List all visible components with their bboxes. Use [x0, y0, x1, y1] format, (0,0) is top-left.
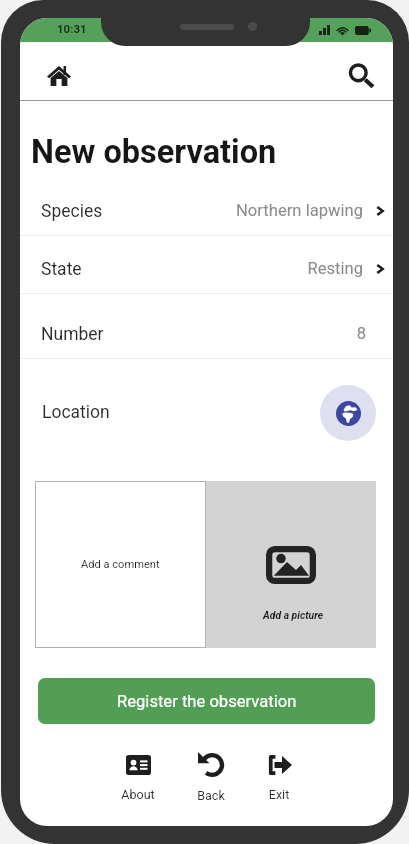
- button[interactable]: Home: [37, 54, 81, 98]
- button[interactable]: Exit: [248, 747, 310, 812]
- staticText: State: [41, 259, 82, 280]
- staticText: Number: [41, 324, 104, 345]
- button[interactable]: Search: [339, 53, 383, 97]
- staticText: Location: [42, 402, 110, 423]
- staticText: Northern lapwing: [20, 201, 363, 220]
- button[interactable]: Back: [180, 744, 242, 812]
- staticText: Add a picture: [263, 609, 324, 621]
- button[interactable]: About: [107, 747, 169, 812]
- button[interactable]: Location: [20, 358, 393, 440]
- staticText: About: [107, 787, 169, 802]
- button[interactable]: State: [20, 235, 393, 293]
- staticText: Species: [41, 201, 103, 222]
- staticText: Register the observation: [117, 692, 297, 711]
- button[interactable]: Species: [20, 177, 393, 235]
- button[interactable]: Number: [20, 293, 393, 358]
- staticText: Back: [180, 788, 242, 803]
- staticText: 8: [20, 324, 366, 343]
- button[interactable]: Register the observation: [38, 678, 375, 724]
- button[interactable]: Add a comment: [35, 481, 206, 648]
- button[interactable]: Add a picture: [206, 481, 376, 648]
- staticText: 10:31: [57, 22, 87, 35]
- staticText: Exit: [248, 787, 310, 802]
- staticText: Add a comment: [81, 558, 160, 571]
- staticText: Resting: [20, 259, 363, 278]
- staticText: New observation: [31, 133, 277, 171]
